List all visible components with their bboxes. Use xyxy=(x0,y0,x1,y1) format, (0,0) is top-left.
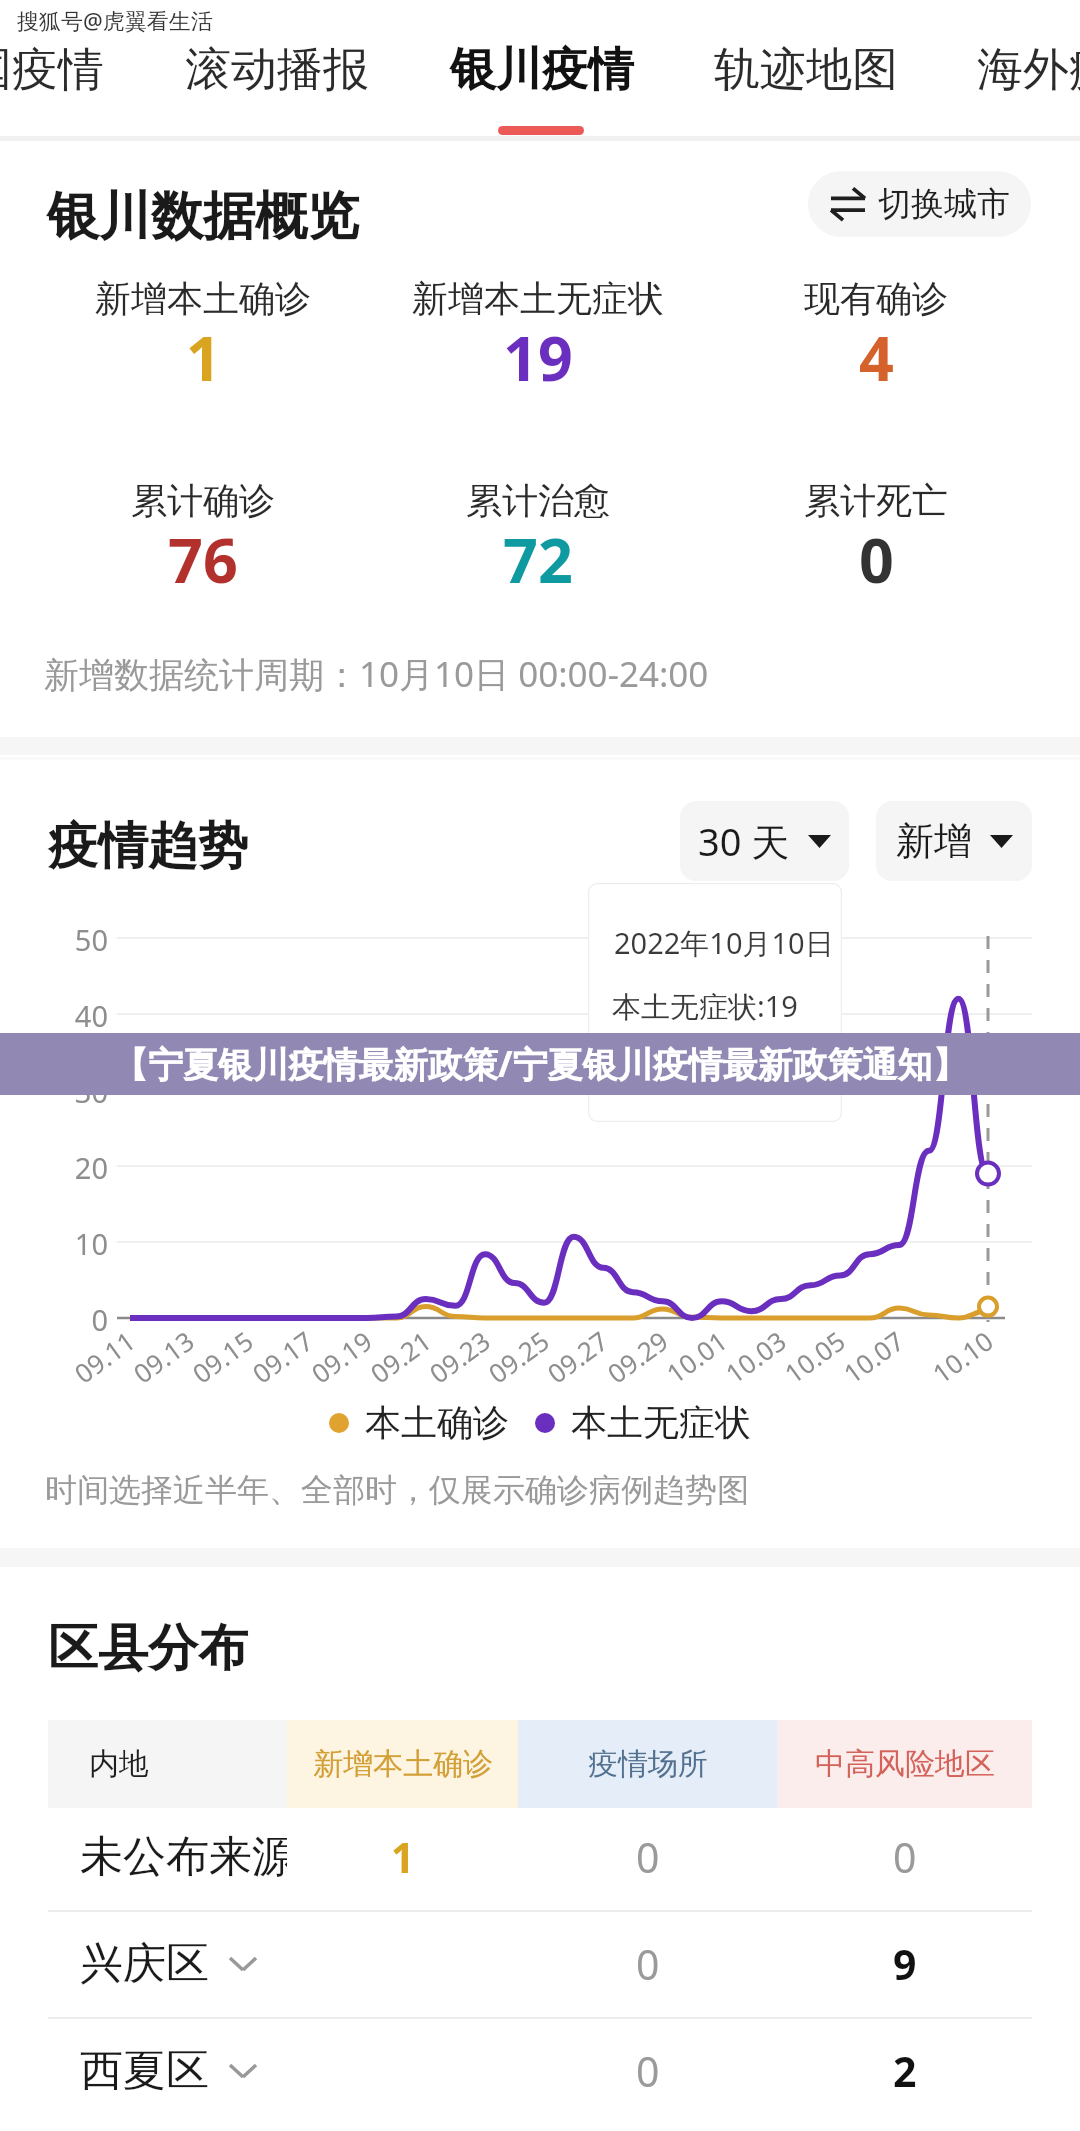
button[interactable]: 滚动播报 xyxy=(185,0,371,136)
staticText: 09.11 xyxy=(67,1323,142,1390)
button[interactable]: 西夏区 xyxy=(48,2017,1032,2124)
staticText: 50 xyxy=(52,920,108,959)
staticText: 轨迹地图 xyxy=(714,41,898,99)
staticText: 未公布来源 xyxy=(80,1830,287,1884)
button[interactable]: 30 天 xyxy=(680,801,849,881)
button[interactable]: 兴庆区 xyxy=(48,1910,1032,2017)
staticText: 09.15 xyxy=(185,1323,260,1390)
staticText: 10.07 xyxy=(836,1323,911,1390)
staticText: 76 xyxy=(168,518,238,601)
staticText: 0 xyxy=(636,1829,660,1885)
staticText: 累计治愈 xyxy=(466,478,610,523)
staticText: 30 xyxy=(52,1072,108,1111)
staticText: 2022年10月10日 xyxy=(614,923,834,963)
staticText: 09.19 xyxy=(304,1323,379,1390)
button[interactable]: 疫情场所 xyxy=(518,1720,777,1808)
staticText: 切换城市 xyxy=(878,183,1010,225)
staticText: 2 xyxy=(893,2043,917,2099)
staticText: 72 xyxy=(503,518,573,601)
button[interactable]: 银川疫情 xyxy=(450,0,636,136)
staticText: 新增数据统计周期：10月10日 00:00-24:00 xyxy=(44,650,709,698)
staticText: 19 xyxy=(503,316,573,399)
staticText: 累计确诊 xyxy=(131,478,275,523)
staticText: 30 天 xyxy=(698,815,790,867)
staticText: 区县分布 xyxy=(48,1617,248,1680)
staticText: 疫情场所 xyxy=(588,1745,708,1783)
staticText: 10.05 xyxy=(777,1323,852,1390)
staticText: 0 xyxy=(636,2043,660,2099)
staticText: 海外疫情 xyxy=(977,41,1080,99)
staticText: 银川疫情 xyxy=(450,41,634,99)
button[interactable]: 轨迹地图 xyxy=(714,0,900,136)
staticText: 现有确诊 xyxy=(804,276,948,321)
button[interactable]: 全国疫情 xyxy=(0,0,106,136)
staticText: 本土无症状:19 xyxy=(612,986,798,1026)
staticText: 时间选择近半年、全部时，仅展示确诊病例趋势图 xyxy=(45,1470,749,1510)
staticText: 20 xyxy=(52,1148,108,1187)
staticText: 0 xyxy=(859,518,894,601)
button[interactable]: 新增本土确诊 xyxy=(287,1720,518,1808)
staticText: 09.17 xyxy=(245,1323,320,1390)
staticText: 滚动播报 xyxy=(185,41,369,99)
staticText: 1 xyxy=(186,316,221,399)
button[interactable]: Switch city xyxy=(808,171,1031,237)
button[interactable]: 未公布来源 xyxy=(48,1803,1032,1910)
staticText: 10 xyxy=(52,1224,108,1263)
staticText: 搜狐号@虎翼看生活 xyxy=(17,5,213,35)
staticText: 累计死亡 xyxy=(804,478,948,523)
staticText: 本土无症状 xyxy=(571,1400,751,1445)
staticText: 新增本土确诊 xyxy=(95,276,311,321)
staticText: 09.23 xyxy=(422,1323,497,1390)
staticText: 0 xyxy=(636,1936,660,1992)
staticText: 内地 xyxy=(89,1745,149,1783)
staticText: 10.03 xyxy=(718,1323,793,1390)
staticText: 09.13 xyxy=(126,1323,201,1390)
staticText: 银川数据概览 xyxy=(47,184,359,250)
staticText: 疫情趋势 xyxy=(48,815,248,878)
staticText: 09.29 xyxy=(600,1323,675,1390)
staticText: 4 xyxy=(859,316,894,399)
staticText: 09.27 xyxy=(540,1323,615,1390)
staticText: 09.25 xyxy=(481,1323,556,1390)
other: Expand xyxy=(227,1954,259,1974)
staticText: 0 xyxy=(52,1300,108,1339)
staticText: 本土确诊 xyxy=(365,1400,509,1445)
other: Switch city xyxy=(830,190,866,218)
button[interactable]: 中高风险地区 xyxy=(777,1720,1032,1808)
staticText: 10.10 xyxy=(925,1323,1000,1390)
staticText: 新增 xyxy=(896,817,972,865)
staticText: 09.21 xyxy=(363,1323,438,1390)
button[interactable]: 海外疫情 xyxy=(977,0,1080,136)
staticText: 全国疫情 xyxy=(0,41,104,99)
staticText: 40 xyxy=(52,996,108,1035)
button[interactable]: 新增 xyxy=(876,801,1032,881)
staticText: 0 xyxy=(893,1829,917,1885)
staticText: 西夏区 xyxy=(80,2044,209,2098)
button[interactable]: 内地 xyxy=(48,1720,287,1808)
staticText: 9 xyxy=(893,1936,917,1992)
staticText: 兴庆区 xyxy=(80,1937,209,1991)
staticText: 10.01 xyxy=(659,1323,734,1390)
staticText: 新增本土无症状 xyxy=(412,276,664,321)
staticText: 1 xyxy=(391,1829,415,1885)
staticText: 【宁夏银川疫情最新政策/宁夏银川疫情最新政策通知】 xyxy=(113,1040,968,1088)
staticText: 中高风险地区 xyxy=(815,1745,995,1783)
other: Expand xyxy=(227,2061,259,2081)
staticText: 新增本土确诊 xyxy=(313,1745,493,1783)
